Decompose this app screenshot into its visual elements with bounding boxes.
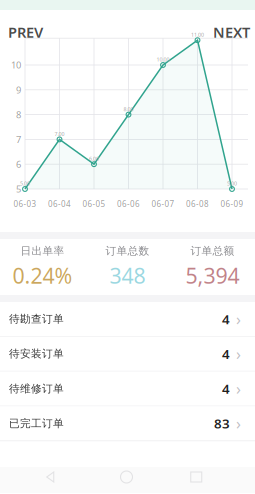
staticText: 83 bbox=[214, 414, 230, 432]
staticText: 7 bbox=[16, 133, 21, 146]
staticText: 06-09 bbox=[220, 199, 243, 209]
staticText: 7.00 bbox=[54, 130, 64, 137]
staticText: 4 bbox=[222, 380, 230, 397]
staticText: 待勘查订单 bbox=[9, 312, 64, 325]
button[interactable]: Recents bbox=[185, 467, 211, 493]
staticText: 6 bbox=[16, 158, 21, 170]
staticText: › bbox=[236, 308, 241, 330]
staticText: 5.00 bbox=[20, 180, 30, 187]
staticText: 06-04 bbox=[48, 199, 71, 209]
staticText: 待维修订单 bbox=[9, 382, 64, 395]
staticText: 4 bbox=[222, 310, 230, 328]
staticText: 6.00 bbox=[89, 155, 99, 162]
staticText: NEXT bbox=[213, 22, 250, 42]
staticText: 已完工订单 bbox=[9, 417, 64, 430]
button[interactable]: Back bbox=[44, 467, 70, 493]
staticText: › bbox=[236, 343, 241, 364]
staticText: 5,394 bbox=[185, 261, 239, 290]
staticText: 5.00 bbox=[227, 180, 237, 187]
staticText: 9 bbox=[16, 84, 21, 96]
button[interactable]: 待勘查订单 bbox=[0, 302, 255, 337]
staticText: 06-06 bbox=[117, 199, 140, 209]
staticText: 0.24% bbox=[12, 261, 72, 290]
button[interactable]: NEXT bbox=[206, 24, 250, 40]
staticText: 4 bbox=[222, 345, 230, 363]
staticText: 06-03 bbox=[13, 199, 36, 209]
staticText: 订单总数 bbox=[105, 244, 149, 257]
staticText: 06-08 bbox=[186, 199, 209, 209]
staticText: 待安装订单 bbox=[9, 347, 64, 360]
staticText: 06-07 bbox=[151, 199, 174, 209]
staticText: 8.00 bbox=[123, 106, 133, 113]
staticText: 订单总额 bbox=[190, 244, 234, 257]
staticText: 348 bbox=[109, 261, 145, 290]
staticText: › bbox=[236, 378, 241, 399]
staticText: 06-05 bbox=[82, 199, 105, 209]
button[interactable]: Home bbox=[114, 467, 140, 493]
button[interactable]: 已完工订单 bbox=[0, 406, 255, 441]
staticText: › bbox=[236, 413, 241, 434]
staticText: 5 bbox=[16, 183, 21, 195]
staticText: 10.00 bbox=[156, 56, 169, 63]
staticText: 日出单率 bbox=[20, 244, 64, 257]
staticText: 10 bbox=[11, 59, 21, 71]
button[interactable]: 待维修订单 bbox=[0, 372, 255, 406]
button[interactable]: 待安装订单 bbox=[0, 337, 255, 372]
staticText: 11.00 bbox=[191, 31, 204, 38]
staticText: PREV bbox=[8, 22, 43, 42]
button[interactable]: PREV bbox=[8, 24, 52, 40]
staticText: 8 bbox=[16, 108, 21, 121]
